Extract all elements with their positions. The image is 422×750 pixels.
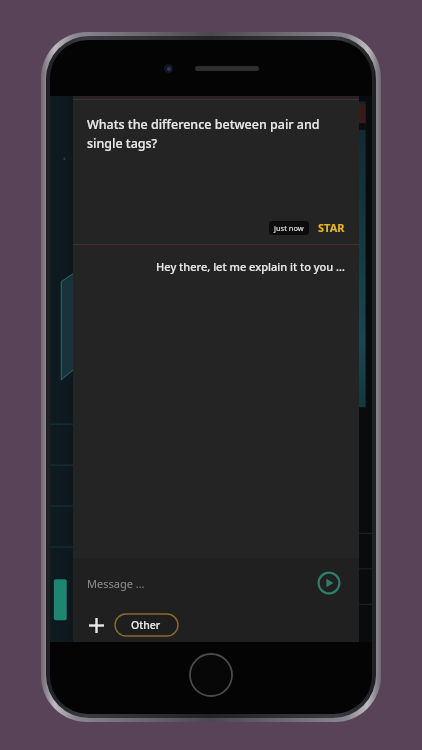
staticText: STAR <box>318 220 345 235</box>
button[interactable]: Message … <box>73 558 359 608</box>
staticText: just now <box>274 223 304 233</box>
button[interactable]: Home <box>189 653 233 697</box>
staticText: Message … <box>87 576 145 591</box>
staticText: Whats the difference between pair and si… <box>87 116 337 152</box>
staticText: Other <box>131 618 161 632</box>
button[interactable]: just now <box>269 221 309 235</box>
button[interactable]: Hey there, let me explain it to you … <box>73 259 359 274</box>
staticText: Hey there, let me explain it to you … <box>156 259 345 274</box>
button[interactable]: Send message <box>317 571 341 595</box>
button[interactable]: Other <box>115 614 177 636</box>
button[interactable]: STAR <box>318 220 345 235</box>
button[interactable]: Add attachment <box>83 612 109 638</box>
